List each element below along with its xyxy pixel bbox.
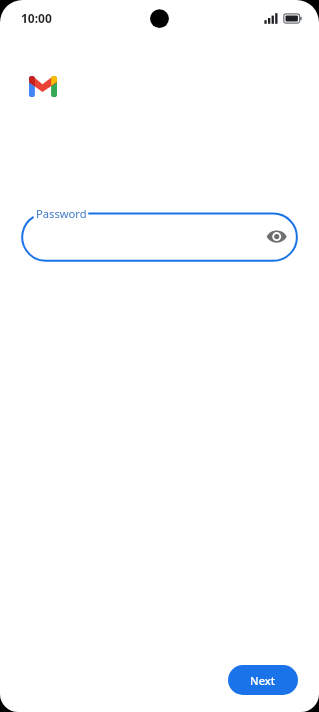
- button[interactable]: Next: [228, 665, 298, 695]
- staticText: Next: [250, 673, 275, 688]
- staticText: Password: [36, 206, 87, 221]
- staticText: 10:00: [21, 10, 52, 26]
- button[interactable]: Show password: [266, 226, 288, 248]
- button[interactable]: Password: [22, 214, 297, 261]
